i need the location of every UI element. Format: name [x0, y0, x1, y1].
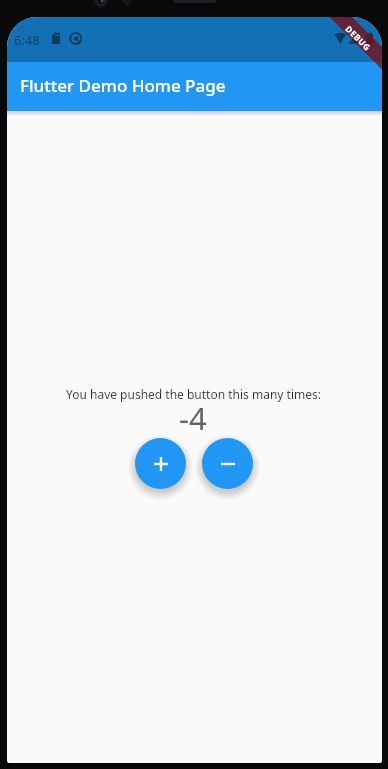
button[interactable]: Decrement: [202, 438, 253, 489]
staticText: 6:48: [14, 31, 40, 49]
button[interactable]: Increment: [135, 438, 186, 489]
staticText: DEBUG: [343, 23, 374, 54]
staticText: -4: [179, 397, 207, 439]
staticText: Flutter Demo Home Page: [20, 74, 226, 97]
staticText: You have pushed the button this many tim…: [66, 386, 321, 402]
